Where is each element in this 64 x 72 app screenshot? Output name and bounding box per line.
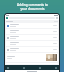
button[interactable] (6, 53, 58, 62)
button[interactable]: Tab 2 (23, 67, 25, 69)
button[interactable] (6, 29, 58, 34)
button[interactable] (6, 41, 58, 46)
button[interactable] (6, 23, 58, 28)
button[interactable] (6, 47, 58, 52)
button[interactable]: Tab 4 (55, 67, 57, 69)
button[interactable] (6, 35, 58, 40)
staticText: your documents (20, 7, 45, 11)
button[interactable]: Menu (6, 17, 8, 19)
button[interactable]: Tab 1 (7, 67, 9, 69)
staticText: Adding comments to (17, 3, 48, 7)
button[interactable]: Tab 3 (39, 67, 41, 69)
